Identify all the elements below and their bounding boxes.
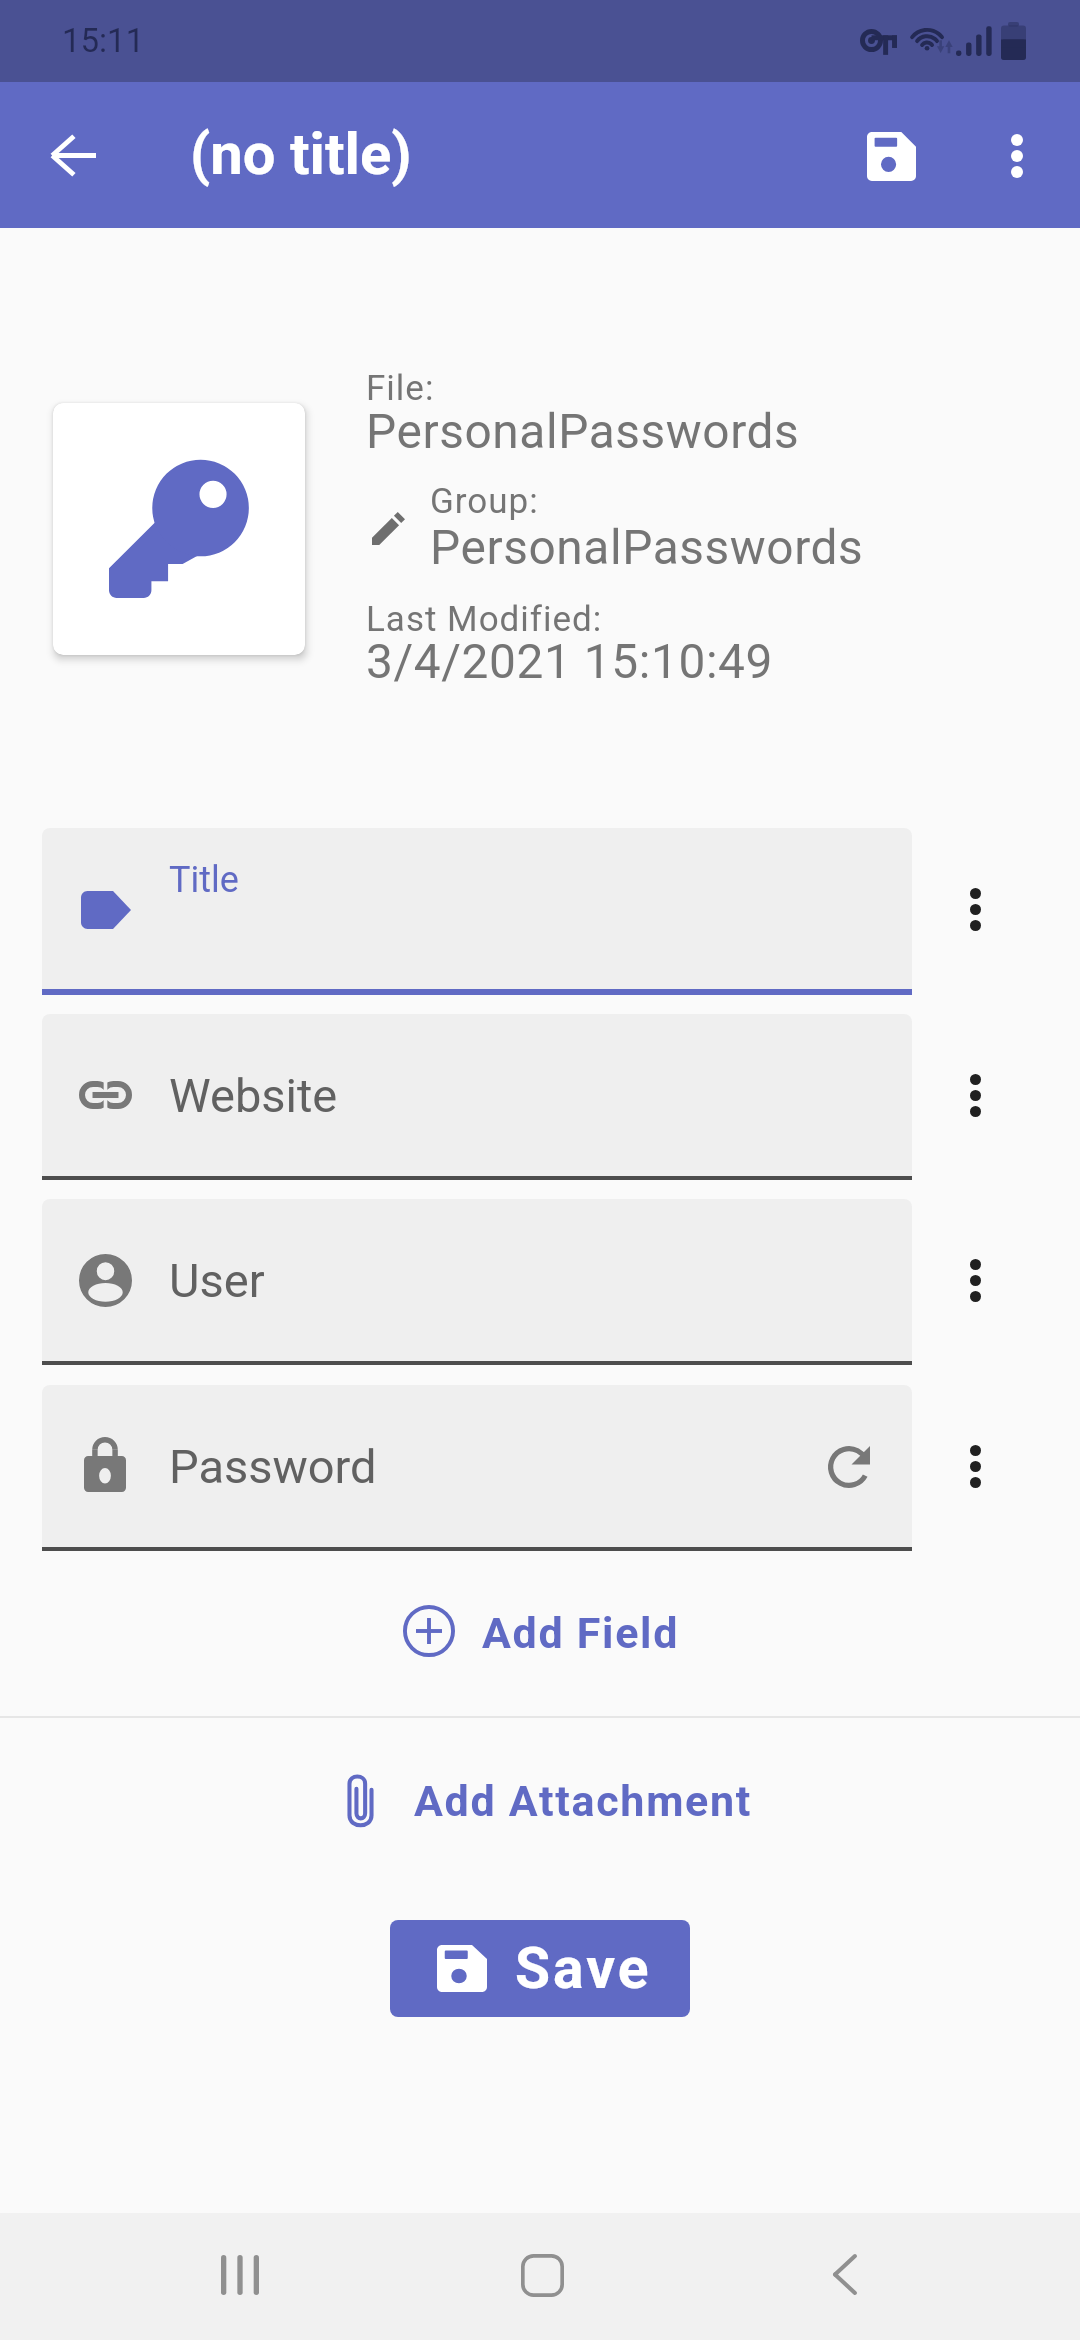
button[interactable]: Title field options bbox=[930, 864, 1020, 954]
staticText: PersonalPasswords bbox=[430, 520, 864, 576]
staticText: (no title) bbox=[190, 120, 412, 188]
button[interactable]: Navigate up bbox=[21, 103, 125, 207]
staticText: File: bbox=[366, 368, 435, 409]
button[interactable]: Add Field bbox=[340, 1584, 740, 1680]
button[interactable]: Password bbox=[42, 1385, 912, 1551]
button[interactable]: Save entry bbox=[839, 104, 943, 208]
button[interactable]: Save bbox=[390, 1920, 690, 2017]
staticText: Add Field bbox=[482, 1608, 680, 1658]
button[interactable]: Website field options bbox=[930, 1050, 1020, 1140]
button[interactable]: User field options bbox=[930, 1235, 1020, 1325]
button[interactable]: Add Attachment bbox=[300, 1752, 800, 1848]
staticText: PersonalPasswords bbox=[366, 404, 800, 460]
button[interactable]: Group: bbox=[366, 474, 906, 574]
button[interactable]: Title bbox=[42, 828, 912, 995]
staticText: Password bbox=[169, 1439, 377, 1494]
staticText: Website bbox=[169, 1068, 338, 1123]
staticText: Last Modified: bbox=[366, 599, 603, 640]
button[interactable]: Home bbox=[452, 2221, 632, 2328]
button[interactable]: User bbox=[42, 1199, 912, 1365]
button[interactable]: Recent apps bbox=[150, 2221, 330, 2328]
staticText: 3/4/2021 15:10:49 bbox=[366, 634, 773, 690]
button[interactable]: Website bbox=[42, 1014, 912, 1180]
button[interactable]: Password field options bbox=[930, 1421, 1020, 1511]
staticText: Save bbox=[515, 1935, 652, 2002]
staticText: 15:11 bbox=[62, 21, 145, 60]
button[interactable]: Entry icon bbox=[53, 403, 305, 655]
staticText: Title bbox=[169, 859, 239, 901]
staticText: User bbox=[169, 1253, 265, 1308]
staticText: Add Attachment bbox=[414, 1776, 753, 1826]
button[interactable]: More options bbox=[965, 104, 1069, 208]
button[interactable]: Back bbox=[755, 2221, 935, 2328]
staticText: Group: bbox=[430, 481, 539, 522]
